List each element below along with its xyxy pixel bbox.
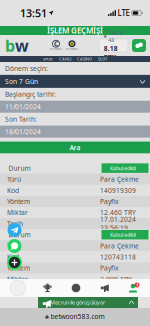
staticText: 7361648 (108, 29, 123, 43)
button[interactable]: SPOR (43, 56, 53, 62)
button[interactable]: Son 7 Gün (0, 75, 150, 88)
staticText: 2.000 TRY (100, 275, 132, 284)
button[interactable]: Promotions (93, 279, 115, 297)
staticText: Dönem seçin: (5, 64, 48, 73)
staticText: 8.18 TRY (104, 44, 118, 62)
staticText: 1 (136, 282, 138, 288)
staticText: SPOR (43, 56, 53, 62)
button[interactable]: Telegram (7, 223, 21, 237)
staticText: 13:51 (20, 6, 47, 20)
staticText: C (54, 39, 58, 48)
staticText: b (5, 35, 15, 56)
staticText: Kabul edildi (110, 165, 136, 172)
staticText: CASINO (77, 56, 92, 62)
button[interactable]: More contacts (7, 255, 22, 270)
button[interactable]: Bonuses (36, 279, 58, 297)
staticText: Miktar (7, 275, 28, 284)
staticText: SLOT (98, 56, 107, 62)
staticText: Para Çekme (100, 175, 139, 184)
button[interactable]: Betwoon home (5, 35, 29, 56)
staticText: Son Tarih: (5, 115, 37, 124)
staticText: 17.01.2024 23:56:19 (100, 215, 136, 232)
staticText: Durum (8, 230, 30, 239)
staticText: SPONSOR (50, 47, 62, 51)
staticText: 120743118 (100, 252, 136, 261)
button[interactable]: 18/01/2024 (0, 126, 150, 138)
button[interactable]: CANLI (59, 56, 71, 62)
staticText: Ara (69, 143, 80, 152)
button[interactable]: Address (0, 311, 150, 322)
staticText: Kabul edildi (110, 231, 136, 238)
staticText: Para Çekme (100, 241, 139, 250)
staticText: Yöntem (7, 197, 30, 206)
button[interactable]: 11/01/2024 (0, 101, 150, 113)
staticText: betwoon583.com (51, 312, 105, 321)
staticText: Türü (7, 175, 21, 184)
staticText: CANLI (59, 56, 71, 62)
staticText: Son 7 Gün (5, 77, 38, 86)
button[interactable]: Balance (99, 39, 128, 52)
staticText: 12.460 TRY (100, 208, 136, 217)
staticText: Yöntem (7, 264, 30, 272)
button[interactable]: Deposit (132, 39, 146, 52)
staticText: LTE (117, 8, 129, 18)
button[interactable]: CASINO (77, 56, 92, 62)
staticText: w (15, 35, 29, 56)
button[interactable]: Account (122, 279, 144, 297)
button[interactable]: Sports (65, 279, 87, 297)
button[interactable]: Sponsor (50, 40, 62, 51)
staticText: 140919309 (100, 186, 136, 195)
staticText: Kod (7, 186, 19, 195)
staticText: İŞLEM GEÇMİŞİ (47, 25, 103, 36)
staticText: 11/01/2024 (5, 102, 41, 111)
button[interactable]: Profile (6, 279, 30, 297)
button[interactable]: Sponsor (66, 40, 78, 51)
staticText: Kod (7, 252, 19, 261)
staticText: Payfix (100, 264, 119, 272)
staticText: 18/01/2024 (5, 127, 41, 136)
staticText: Payfix (100, 197, 119, 206)
button[interactable]: Ara (0, 142, 150, 154)
staticText: Miktar (7, 208, 28, 217)
staticText: Başlangıç tarihi: (5, 90, 56, 99)
staticText: SPONSOR (66, 47, 78, 51)
staticText: Durum (8, 164, 30, 173)
button[interactable]: Mecrun ile görüşülüyor (38, 297, 138, 308)
button[interactable]: WhatsApp (7, 239, 21, 253)
staticText: Türü (7, 241, 21, 250)
staticText: Tarih (7, 219, 23, 228)
staticText: Mecrun ile görüşülüyor (50, 299, 105, 306)
button[interactable]: SLOT (98, 56, 107, 62)
